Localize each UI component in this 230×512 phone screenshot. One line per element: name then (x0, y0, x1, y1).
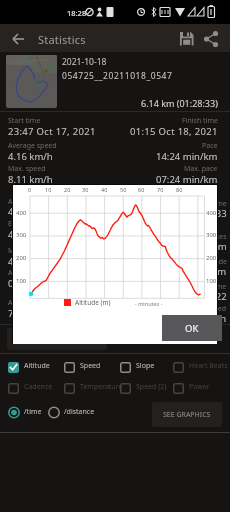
staticText: 200 (16, 254, 27, 262)
staticText: 3.1 km/h (187, 312, 227, 325)
staticText: 50 (120, 186, 127, 193)
staticText: Elev. losses (190, 232, 227, 242)
staticText: Finish time (182, 116, 218, 126)
button[interactable]: /time (8, 406, 98, 419)
staticText: 400 (16, 209, 27, 217)
staticText: 70 (157, 186, 164, 193)
staticText: 100 (16, 277, 27, 285)
staticText: Ascent (8, 298, 30, 308)
staticText: Ascent time (188, 199, 227, 209)
staticText: Cadence (24, 382, 53, 392)
staticText: 8.11 km/h (8, 173, 53, 186)
staticText: 432 m (8, 255, 36, 268)
staticText: 40 (101, 186, 108, 193)
staticText: Avg speed (192, 304, 227, 314)
staticText: 2021-10-18 (62, 56, 107, 68)
button[interactable]: Slope (120, 361, 230, 373)
staticText: Pace (202, 141, 218, 151)
staticText: 18:28 (67, 8, 87, 18)
button[interactable] (202, 30, 222, 48)
staticText: 4.16 km/h (8, 150, 53, 163)
staticText: OK (185, 322, 199, 335)
button[interactable]: Speed (2) (120, 382, 230, 394)
staticText: 6.14 km (01:28:33) (141, 97, 218, 109)
staticText: Start time (8, 116, 41, 126)
staticText: Altitude (m) (75, 298, 111, 307)
staticText: Average speed up (8, 197, 68, 207)
staticText: Temperature (80, 382, 123, 392)
staticText: Speed (80, 361, 101, 371)
button[interactable]: /distance (48, 406, 138, 419)
staticText: Slope (136, 361, 155, 371)
staticText: - minutes - (135, 300, 163, 307)
staticText: SEE GRAPHICS (163, 410, 211, 420)
staticText: 200 (206, 254, 217, 262)
staticText: Average speed (8, 141, 57, 151)
staticText: LIST VALUES (12, 333, 56, 343)
staticText: 0 (28, 186, 32, 193)
staticText: Heart Beats (189, 361, 228, 371)
button[interactable]: SEE GRAPHICS (152, 402, 222, 427)
staticText: 00:45:33 (189, 207, 227, 220)
staticText: Max. grade (190, 257, 227, 267)
staticText: 10 (45, 186, 52, 193)
staticText: Elevation gain (8, 219, 55, 229)
button[interactable] (8, 29, 28, 49)
staticText: 60 (138, 186, 145, 193)
button[interactable]: Temperature (64, 382, 184, 394)
button[interactable]: Altitude (8, 361, 128, 373)
staticText: 20 (64, 186, 71, 193)
staticText: 300 (206, 231, 217, 239)
staticText: 31 m (204, 265, 227, 278)
staticText: 054725__20211018_0547 (62, 70, 173, 82)
button[interactable]: Heart Beats (173, 361, 230, 373)
staticText: 01:15 Oct 18, 2021 (130, 125, 218, 138)
staticText: 80 (176, 186, 183, 193)
staticText: 4.12 km/h (8, 205, 53, 218)
staticText: Speed (2) (136, 382, 167, 392)
staticText: Ascent time (8, 268, 47, 278)
staticText: 14:24 min/km (156, 150, 218, 163)
staticText: Altitude (24, 361, 50, 371)
staticText: Power (189, 382, 210, 392)
staticText: 400 (206, 209, 217, 217)
staticText: Max. pace (184, 164, 218, 174)
staticText: /time (24, 407, 42, 417)
staticText: 07:24 min/km (156, 173, 218, 186)
staticText: 00:52:10 (8, 277, 46, 290)
button[interactable]: Cadence (8, 382, 128, 394)
staticText: 712 m (8, 307, 36, 320)
staticText: 23:47 Oct 17, 2021 (8, 125, 96, 138)
button[interactable]: OK (162, 315, 222, 341)
staticText: 100 (206, 277, 217, 285)
staticText: /distance (64, 407, 95, 417)
staticText: 492 m (8, 228, 36, 241)
staticText: 30 (82, 186, 89, 193)
staticText: Max. altitude (8, 246, 51, 256)
staticText: Descent time (183, 282, 227, 292)
button[interactable] (178, 30, 198, 48)
staticText: 00:36:22 (189, 290, 227, 303)
button[interactable]: Power (173, 382, 230, 394)
staticText: 300 (16, 231, 27, 239)
staticText: 460 m (199, 240, 227, 253)
staticText: Max. speed (8, 164, 46, 174)
button[interactable]: Speed (64, 361, 184, 373)
staticText: Statistics (38, 32, 86, 47)
